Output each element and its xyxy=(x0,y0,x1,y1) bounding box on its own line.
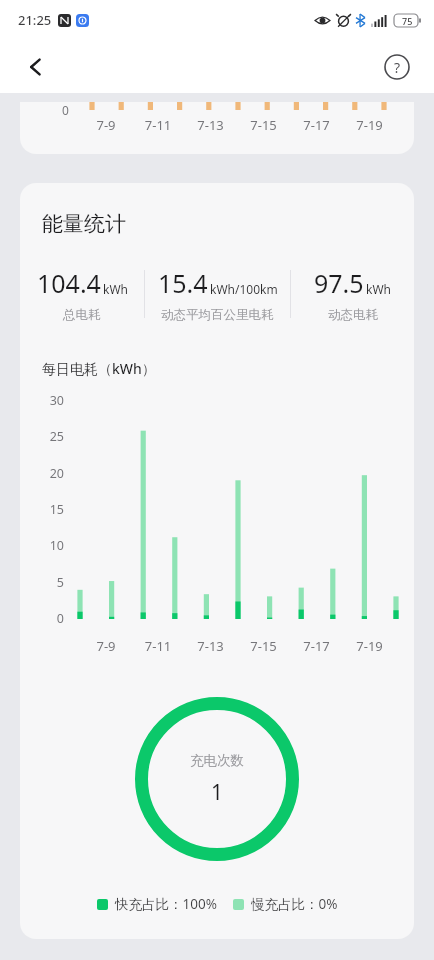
staticText: 0 xyxy=(42,610,64,627)
staticText: 75 xyxy=(402,15,413,27)
staticText: 30 xyxy=(42,392,64,409)
button[interactable]: Help xyxy=(376,46,418,88)
staticText: 7-19 xyxy=(343,116,396,134)
staticText: 5 xyxy=(42,574,64,591)
staticText: 快充占比：100% xyxy=(115,895,217,913)
staticText: kWh/100km xyxy=(210,281,278,297)
staticText: 21:25 xyxy=(18,11,52,29)
staticText: kWh xyxy=(103,281,128,297)
staticText: 25 xyxy=(42,428,64,445)
staticText: 7-15 xyxy=(237,637,290,655)
staticText: 0 xyxy=(62,102,69,118)
staticText: 1 xyxy=(211,778,224,807)
staticText: 7-11 xyxy=(132,116,184,134)
staticText: 能量统计 xyxy=(42,211,126,237)
staticText: 10 xyxy=(42,537,64,554)
staticText: 7-13 xyxy=(184,637,237,655)
staticText: 总电耗 xyxy=(63,307,101,323)
staticText: kWh xyxy=(366,281,391,297)
staticText: 动态平均百公里电耗 xyxy=(161,307,274,323)
staticText: 7-9 xyxy=(80,116,132,134)
staticText: 充电次数 xyxy=(190,752,244,769)
staticText: ? xyxy=(394,58,401,77)
staticText: 20 xyxy=(42,465,64,482)
staticText: 动态电耗 xyxy=(328,307,378,323)
staticText: 7-11 xyxy=(132,637,184,655)
staticText: 7-19 xyxy=(343,637,396,655)
staticText: 7-17 xyxy=(290,637,343,655)
staticText: 7-9 xyxy=(80,637,132,655)
button[interactable]: 充电次数 xyxy=(135,697,299,861)
staticText: 15 xyxy=(42,501,64,518)
staticText: 7-13 xyxy=(184,116,237,134)
staticText: 每日电耗（kWh） xyxy=(42,359,156,378)
staticText: 7-15 xyxy=(237,116,290,134)
staticText: 15.4 xyxy=(158,266,208,300)
button[interactable]: Back xyxy=(14,45,58,89)
staticText: 97.5 xyxy=(314,266,364,300)
staticText: 104.4 xyxy=(37,266,101,300)
staticText: 慢充占比：0% xyxy=(251,895,338,913)
staticText: 7-17 xyxy=(290,116,343,134)
